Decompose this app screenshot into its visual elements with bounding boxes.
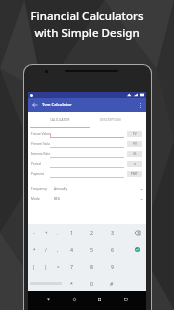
button[interactable]: Back [44, 295, 53, 304]
button[interactable]: Overview [95, 295, 104, 304]
button[interactable]: / [40, 241, 52, 258]
staticText: i% [133, 152, 137, 156]
staticText: Mode: [31, 197, 41, 201]
button[interactable]: 8 [82, 258, 100, 275]
staticText: PV [133, 142, 137, 146]
button[interactable]: 0 [82, 275, 100, 291]
button[interactable]: DESCRIPTION [81, 112, 139, 129]
button[interactable]: 4 [62, 241, 80, 258]
staticText: 9 [111, 263, 114, 270]
staticText: Annually [54, 187, 68, 191]
button[interactable]: = [52, 258, 64, 275]
staticText: Future Value [31, 132, 50, 136]
staticText: , [57, 247, 59, 253]
staticText: - [33, 230, 35, 236]
staticText: Payment [31, 172, 45, 176]
button[interactable]: ( [28, 258, 40, 275]
staticText: 8 [90, 263, 93, 270]
staticText: / [45, 247, 47, 253]
button[interactable]: PMT [127, 171, 142, 177]
button[interactable]: More options [135, 98, 146, 112]
button[interactable]: 2 [82, 224, 100, 241]
button[interactable]: Frequency: [28, 184, 146, 194]
button[interactable]: FV [127, 131, 142, 137]
staticText: 4 [70, 246, 73, 253]
button[interactable]: Delete [128, 224, 146, 241]
staticText: BEG [54, 197, 61, 201]
button[interactable]: Keyboard [121, 295, 130, 304]
button[interactable]: 7 [62, 258, 80, 275]
staticText: 0 [90, 280, 93, 287]
button[interactable]: 3 [103, 224, 121, 241]
button[interactable]: * [62, 275, 80, 291]
staticText: = [57, 264, 60, 270]
button[interactable]: PV [127, 141, 142, 147]
button[interactable]: Mode: [28, 194, 146, 204]
staticText: # [110, 280, 114, 287]
button[interactable]: Back [28, 98, 42, 112]
staticText: PMT [131, 172, 138, 176]
staticText: Tvm Calculator [42, 102, 72, 108]
staticText: * [70, 280, 73, 287]
staticText: . [57, 230, 59, 236]
button[interactable]: CALCULATOR [30, 112, 90, 129]
staticText: * [33, 247, 36, 253]
button[interactable]: 1 [62, 224, 80, 241]
staticText: 2 [90, 229, 93, 236]
button[interactable]: 5 [82, 241, 100, 258]
button[interactable]: * [28, 241, 40, 258]
button[interactable]: Home [70, 295, 79, 304]
staticText: CALCULATOR [50, 118, 70, 122]
button[interactable]: Enter [128, 241, 146, 258]
staticText: DESCRIPTION [100, 118, 121, 122]
button[interactable]: n [127, 161, 142, 167]
staticText: Financial Calculators [30, 8, 144, 24]
staticText: 3 [111, 229, 114, 236]
staticText: Interest Rate [31, 152, 50, 156]
staticText: Frequency: [31, 187, 48, 191]
staticText: 7 [70, 263, 73, 270]
button[interactable]: + [40, 224, 52, 241]
staticText: FV [133, 132, 137, 136]
staticText: 5 [90, 246, 93, 253]
button[interactable]: 9 [103, 258, 121, 275]
staticText: + [45, 230, 48, 236]
staticText: 1 [70, 229, 73, 236]
staticText: 6 [111, 246, 114, 253]
staticText: ) [45, 264, 47, 270]
button[interactable]: Space [30, 275, 62, 291]
button[interactable]: # [103, 275, 121, 291]
staticText: ( [33, 264, 35, 270]
button[interactable]: 6 [103, 241, 121, 258]
button[interactable]: i% [127, 151, 142, 157]
button[interactable]: - [28, 224, 40, 241]
button[interactable]: ) [40, 258, 52, 275]
staticText: Period [31, 162, 41, 166]
staticText: Present Value [31, 142, 50, 146]
staticText: n [134, 162, 136, 166]
staticText: with Simple Design [34, 25, 140, 41]
button[interactable]: , [52, 241, 64, 258]
